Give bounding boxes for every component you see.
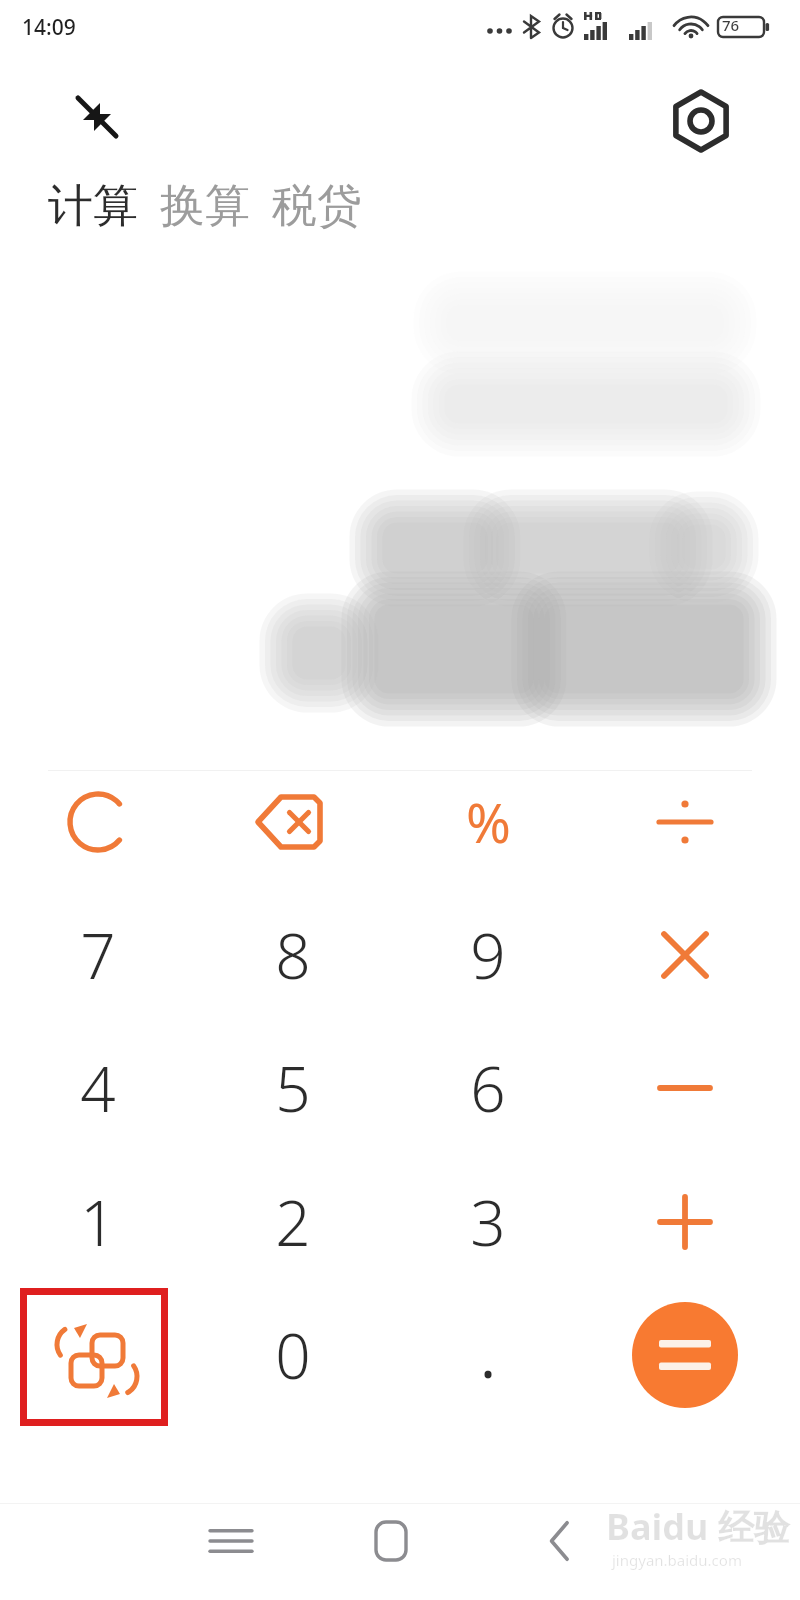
- button[interactable]: Collapse: [56, 80, 136, 160]
- staticText: jingyan.baidu.com: [612, 1550, 742, 1570]
- button[interactable]: 3: [406, 1156, 570, 1288]
- staticText: .: [480, 1316, 496, 1395]
- button[interactable]: 5: [211, 1022, 375, 1154]
- staticText: 计算: [48, 178, 138, 235]
- button[interactable]: 0: [211, 1289, 375, 1421]
- staticText: 7: [80, 913, 116, 997]
- button[interactable]: Multiply: [603, 889, 767, 1021]
- staticText: 4: [80, 1046, 116, 1130]
- staticText: 5: [275, 1046, 311, 1130]
- staticText: 14:09: [22, 13, 76, 42]
- button[interactable]: Plus: [603, 1156, 767, 1288]
- button[interactable]: Minus: [603, 1022, 767, 1154]
- button[interactable]: Settings: [658, 78, 744, 164]
- button[interactable]: 9: [406, 889, 570, 1021]
- staticText: 税贷: [272, 178, 362, 235]
- button[interactable]: Backspace: [211, 756, 375, 888]
- staticText: 6: [470, 1046, 506, 1130]
- staticText: 0: [275, 1313, 311, 1397]
- button[interactable]: 4: [16, 1022, 180, 1154]
- button[interactable]: 8: [211, 889, 375, 1021]
- button[interactable]: %: [406, 756, 570, 888]
- button[interactable]: 2: [211, 1156, 375, 1288]
- staticText: 76: [722, 15, 740, 35]
- staticText: 换算: [160, 178, 250, 235]
- staticText: %: [466, 785, 511, 859]
- button[interactable]: .: [406, 1289, 570, 1421]
- button[interactable]: Back: [513, 1495, 605, 1587]
- button[interactable]: 7: [16, 889, 180, 1021]
- staticText: 3: [470, 1180, 506, 1264]
- button[interactable]: Home: [345, 1495, 437, 1587]
- staticText: 8: [275, 913, 311, 997]
- button[interactable]: 计算: [46, 176, 140, 237]
- button[interactable]: Clear: [16, 756, 180, 888]
- button[interactable]: 6: [406, 1022, 570, 1154]
- staticText: 1: [80, 1180, 116, 1264]
- staticText: 9: [470, 913, 506, 997]
- button[interactable]: Divide: [603, 756, 767, 888]
- button[interactable]: 税贷: [270, 176, 364, 237]
- button[interactable]: Recent apps: [185, 1495, 277, 1587]
- button[interactable]: 1: [16, 1156, 180, 1288]
- staticText: Baidu 经验: [606, 1502, 790, 1551]
- staticText: 2: [275, 1180, 311, 1264]
- button[interactable]: 换算: [158, 176, 252, 237]
- button[interactable]: Swap units: [20, 1288, 168, 1426]
- button[interactable]: Equals: [632, 1302, 738, 1408]
